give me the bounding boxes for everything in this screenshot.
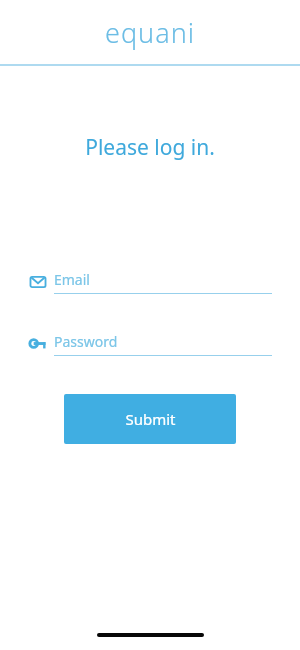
staticText: equani <box>105 14 195 51</box>
button[interactable]: Email <box>30 270 272 294</box>
other: Email <box>30 274 46 290</box>
staticText: Email <box>54 270 90 289</box>
staticText: Please log in. <box>85 133 215 162</box>
staticText: Submit <box>125 409 176 429</box>
button[interactable]: Submit <box>64 394 236 444</box>
button[interactable]: Password <box>30 332 272 356</box>
other: Password <box>30 336 46 352</box>
staticText: Password <box>54 332 118 351</box>
